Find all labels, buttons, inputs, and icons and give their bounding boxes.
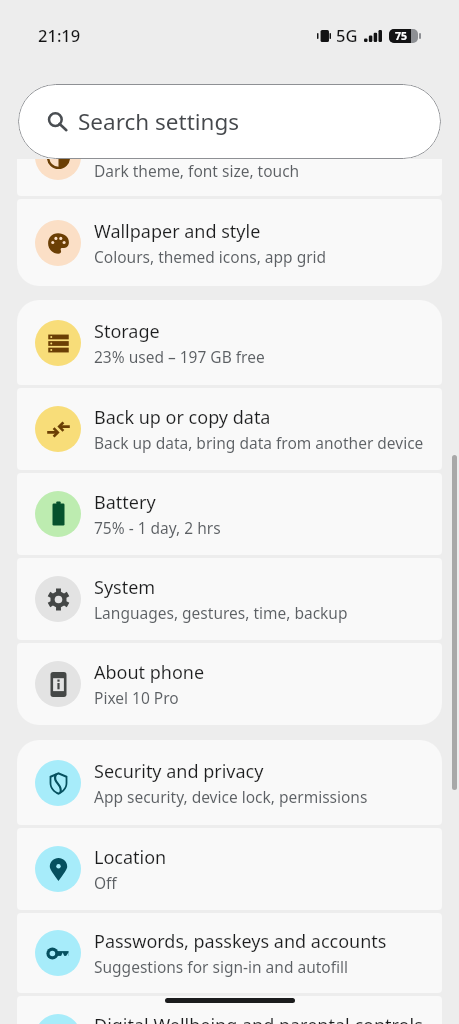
staticText: Languages, gestures, time, backup <box>94 602 348 623</box>
staticText: Battery <box>94 490 156 515</box>
staticText: Back up data, bring data from another de… <box>94 432 424 453</box>
staticText: Suggestions for sign-in and autofill <box>94 956 349 977</box>
staticText: Colours, themed icons, app grid <box>94 246 327 267</box>
staticText: Search settings <box>78 106 240 137</box>
staticText: Security and privacy <box>94 759 264 784</box>
staticText: 5G <box>336 24 358 46</box>
button[interactable]: Storage <box>17 300 442 385</box>
staticText: Pixel 10 Pro <box>94 687 179 708</box>
button[interactable]: System <box>17 558 442 640</box>
button[interactable]: Battery <box>17 473 442 555</box>
staticText: Back up or copy data <box>94 405 271 430</box>
staticText: Storage <box>94 319 160 344</box>
button[interactable]: Back up or copy data <box>17 388 442 470</box>
button[interactable]: Wallpaper and style <box>17 199 442 286</box>
staticText: App security, device lock, permissions <box>94 786 368 807</box>
button[interactable]: Location <box>17 828 442 910</box>
button[interactable]: Digital Wellbeing and parental controls <box>17 996 442 1024</box>
button[interactable]: Passwords, passkeys and accounts <box>17 913 442 993</box>
button[interactable]: Search settings <box>18 84 441 159</box>
staticText: System <box>94 575 156 600</box>
button[interactable]: Security and privacy <box>17 740 442 825</box>
staticText: Digital Wellbeing and parental controls <box>94 1013 423 1024</box>
staticText: Location <box>94 845 167 870</box>
staticText: About phone <box>94 660 205 685</box>
staticText: Passwords, passkeys and accounts <box>94 929 387 954</box>
staticText: 23% used – 197 GB free <box>94 346 265 367</box>
staticText: Dark theme, font size, touch <box>94 160 300 181</box>
staticText: 75% - 1 day, 2 hrs <box>94 517 221 538</box>
staticText: Wallpaper and style <box>94 219 261 244</box>
staticText: 75 <box>395 29 408 43</box>
button[interactable]: About phone <box>17 643 442 725</box>
staticText: Off <box>94 872 117 893</box>
staticText: 21:19 <box>38 24 81 46</box>
